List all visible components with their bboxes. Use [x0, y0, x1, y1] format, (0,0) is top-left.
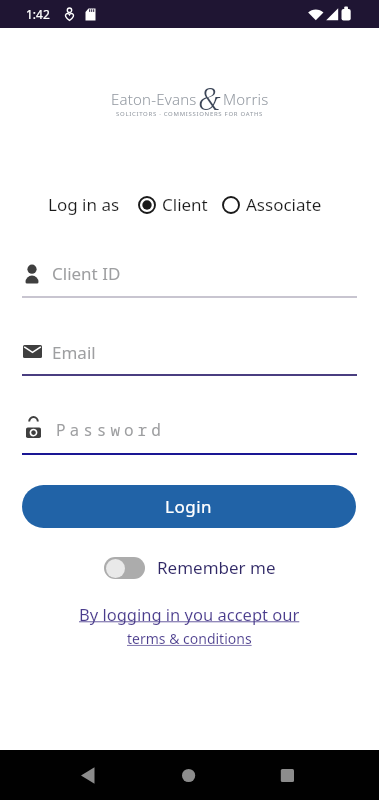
staticText: Client — [162, 193, 208, 216]
button[interactable]: terms & conditions — [127, 629, 252, 648]
staticText: Remember me — [157, 556, 276, 579]
staticText: Login — [165, 495, 213, 518]
staticText: Client ID — [52, 262, 121, 285]
staticText: & — [199, 78, 221, 119]
staticText: 1:42 — [26, 6, 50, 22]
button[interactable] — [170, 760, 207, 790]
staticText: Morris — [223, 89, 269, 109]
button[interactable]: Login — [22, 485, 356, 528]
button[interactable] — [269, 760, 306, 790]
button[interactable]: Associate — [222, 193, 322, 216]
staticText: Log in as — [48, 193, 120, 216]
staticText: Email — [52, 341, 96, 363]
staticText: SOLICITORS · COMMISSIONERS FOR OATHS — [116, 110, 264, 118]
staticText: Associate — [246, 193, 322, 216]
button[interactable]: By logging in you accept our — [79, 603, 300, 625]
staticText: Password — [56, 419, 165, 441]
button[interactable] — [70, 760, 106, 790]
staticText: Eaton-Evans — [111, 89, 197, 109]
button[interactable]: Remember me — [104, 556, 276, 579]
button[interactable]: Client — [138, 193, 208, 216]
